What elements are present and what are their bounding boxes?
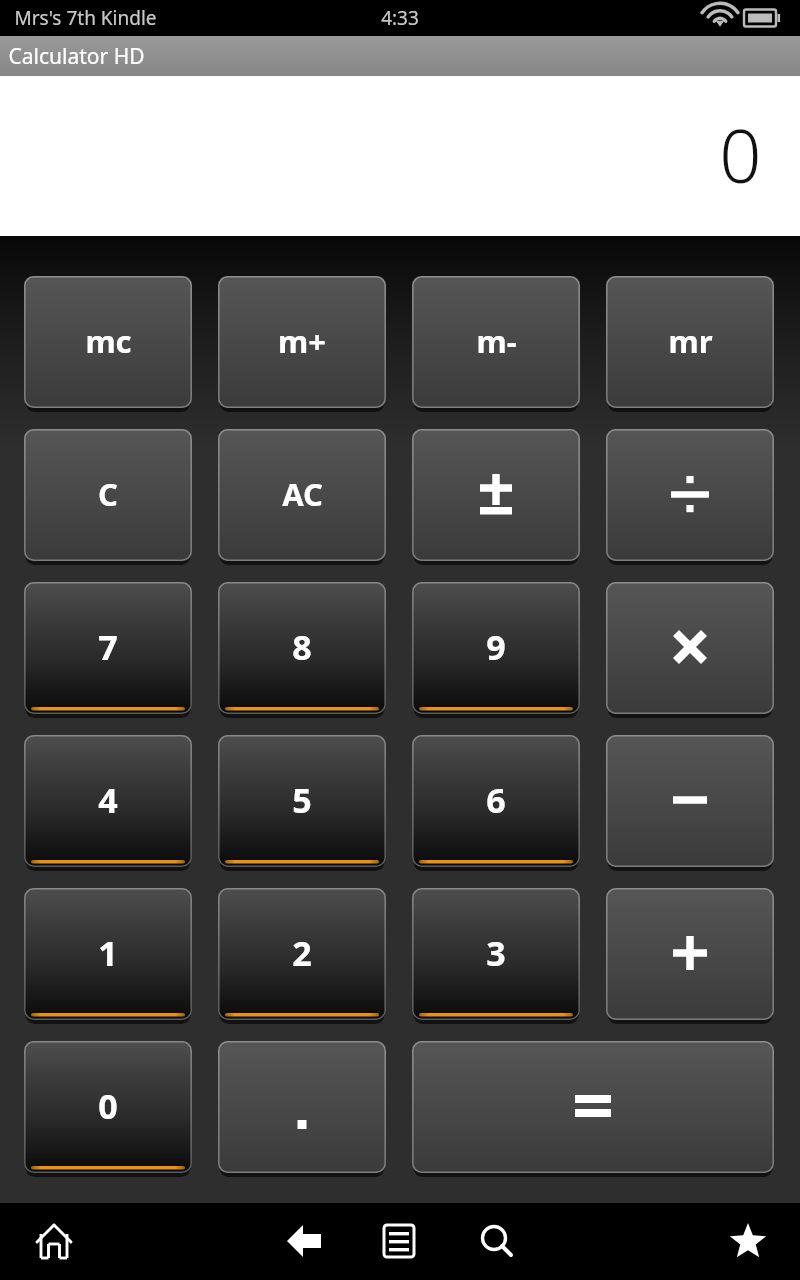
button[interactable]: 4 <box>24 735 192 869</box>
staticText: 4 <box>98 777 118 823</box>
button[interactable]: 5 <box>218 735 386 869</box>
button[interactable]: Minus <box>606 735 774 869</box>
staticText: C <box>98 473 118 515</box>
staticText: 0 <box>719 104 762 205</box>
button[interactable]: 9 <box>412 582 580 716</box>
button[interactable]: 0 <box>24 1041 192 1175</box>
button[interactable]: 8 <box>218 582 386 716</box>
button[interactable]: 3 <box>412 888 580 1022</box>
button[interactable]: Plus minus <box>412 429 580 563</box>
staticText: 2 <box>292 930 312 976</box>
staticText: 7 <box>98 624 118 670</box>
button[interactable]: AC <box>218 429 386 563</box>
button[interactable]: Home <box>20 1208 88 1274</box>
button[interactable]: Favorites <box>714 1208 782 1274</box>
staticText: mr <box>668 320 713 362</box>
button[interactable]: Multiply <box>606 582 774 716</box>
staticText: mc <box>85 320 132 362</box>
staticText: 3 <box>486 930 506 976</box>
button[interactable]: Menu <box>365 1208 433 1274</box>
button[interactable]: 2 <box>218 888 386 1022</box>
button[interactable]: m+ <box>218 276 386 410</box>
staticText: 8 <box>292 624 312 670</box>
staticText: Mrs's 7th Kindle <box>14 5 157 31</box>
button[interactable]: Divide <box>606 429 774 563</box>
button[interactable]: Decimal point <box>218 1041 386 1175</box>
staticText: m+ <box>278 320 326 362</box>
button[interactable]: 6 <box>412 735 580 869</box>
button[interactable]: Equals <box>412 1041 774 1175</box>
button[interactable]: Plus <box>606 888 774 1022</box>
staticText: 6 <box>486 777 506 823</box>
staticText: 5 <box>292 777 312 823</box>
button[interactable]: Back <box>271 1208 339 1274</box>
staticText: 0 <box>98 1083 118 1129</box>
staticText: m- <box>476 320 517 362</box>
button[interactable]: mr <box>606 276 774 410</box>
staticText: AC <box>282 473 323 515</box>
staticText: Calculator HD <box>8 42 145 71</box>
button[interactable]: 7 <box>24 582 192 716</box>
staticText: 9 <box>486 624 506 670</box>
button[interactable]: Search <box>462 1208 530 1274</box>
button[interactable]: mc <box>24 276 192 410</box>
button[interactable]: C <box>24 429 192 563</box>
button[interactable]: 1 <box>24 888 192 1022</box>
staticText: 4:33 <box>381 5 419 31</box>
staticText: 1 <box>98 930 118 976</box>
button[interactable]: m- <box>412 276 580 410</box>
